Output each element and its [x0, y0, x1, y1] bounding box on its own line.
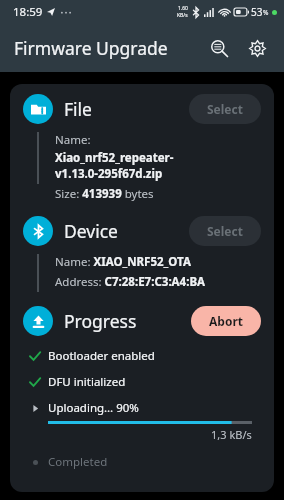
- staticText: Completed: [48, 454, 108, 470]
- button[interactable]: DFU initialized: [22, 374, 274, 390]
- staticText: Address: C7:28:E7:C3:A4:BA: [55, 274, 205, 290]
- staticText: File: [64, 97, 92, 121]
- staticText: Progress: [64, 309, 137, 333]
- staticText: 18:59: [13, 4, 43, 20]
- staticText: Abort: [209, 313, 243, 329]
- staticText: Select: [207, 101, 243, 117]
- staticText: 53: [251, 5, 263, 19]
- staticText: 1.60: [178, 5, 188, 12]
- button[interactable]: Select: [189, 94, 261, 124]
- staticText: Size: 413939 bytes: [55, 186, 154, 202]
- button[interactable]: Select: [189, 216, 261, 246]
- staticText: Firmware Upgrade: [14, 36, 168, 60]
- staticText: DFU initialized: [48, 374, 126, 390]
- staticText: Bootloader enabled: [48, 348, 155, 364]
- button[interactable]: Bootloader enabled: [22, 348, 274, 364]
- staticText: KB/s: [177, 12, 188, 19]
- staticText: Name:: [55, 132, 91, 148]
- button[interactable]: Abort: [191, 306, 261, 336]
- staticText: Uploading… 90%: [48, 400, 139, 416]
- staticText: %: [263, 8, 269, 17]
- button[interactable]: Completed: [22, 454, 274, 470]
- button[interactable]: Settings: [240, 31, 274, 65]
- staticText: Name: XIAO_NRF52_OTA: [55, 254, 191, 270]
- staticText: Device: [64, 219, 118, 243]
- button[interactable]: Search: [202, 31, 236, 65]
- staticText: Select: [207, 223, 243, 239]
- staticText: Xiao_nrf52_repeater-v1.13.0-295f67d.zip: [55, 150, 260, 182]
- staticText: 1,3 kB/s: [211, 427, 252, 442]
